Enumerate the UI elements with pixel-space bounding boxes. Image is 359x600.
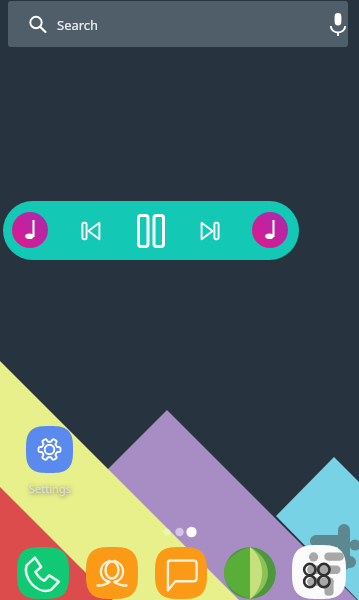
- button[interactable]: Next track: [192, 213, 228, 249]
- button[interactable]: Messages: [155, 547, 207, 599]
- button[interactable]: Apps: [292, 545, 346, 599]
- staticText: Settings: [29, 481, 71, 496]
- button[interactable]: Search: [8, 1, 348, 47]
- button[interactable]: Album art 2: [252, 212, 288, 248]
- button[interactable]: Contacts: [86, 547, 138, 599]
- button[interactable]: Internet: [224, 547, 276, 599]
- button[interactable]: Pause: [132, 212, 170, 250]
- button[interactable]: Album art: [3, 201, 299, 260]
- button[interactable]: Settings: [26, 426, 73, 496]
- button[interactable]: Previous track: [73, 213, 109, 249]
- button[interactable]: Phone: [17, 547, 69, 599]
- button[interactable]: Album art: [12, 212, 48, 248]
- staticText: Search: [57, 16, 99, 34]
